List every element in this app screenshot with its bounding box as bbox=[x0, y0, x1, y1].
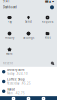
staticText: Coffee Shop bbox=[7, 78, 25, 81]
staticText: Dashboard bbox=[3, 6, 17, 9]
staticText: Transit bbox=[7, 88, 15, 91]
button[interactable]: Account bbox=[42, 97, 45, 100]
staticText: ▮▮▮ ▲ ▰ bbox=[45, 0, 54, 3]
button[interactable]: Search bbox=[51, 62, 54, 65]
button[interactable]: Profile bbox=[50, 5, 54, 9]
staticText: History bbox=[5, 36, 14, 40]
staticText: Grocery Store bbox=[7, 68, 25, 71]
button[interactable]: More bbox=[0, 44, 19, 60]
staticText: Recent bbox=[3, 62, 13, 65]
staticText: Yesterday -$5.25 bbox=[7, 82, 31, 85]
button[interactable]: History bbox=[0, 28, 19, 44]
button[interactable]: Transit bbox=[0, 86, 57, 96]
button[interactable]: Grocery Store bbox=[0, 67, 57, 77]
staticText: Request bbox=[41, 20, 53, 24]
staticText: 9:41 bbox=[3, 0, 10, 3]
button[interactable]: Send bbox=[19, 12, 38, 28]
button[interactable]: Pay bbox=[0, 12, 19, 28]
staticText: Mon -$2.75 bbox=[7, 91, 25, 95]
button[interactable]: Home bbox=[12, 97, 15, 100]
button[interactable]: Settings bbox=[19, 28, 38, 44]
button[interactable]: Coffee Shop bbox=[0, 77, 57, 86]
staticText: Send bbox=[25, 20, 32, 24]
staticText: Pay bbox=[7, 20, 11, 24]
staticText: Files bbox=[44, 36, 50, 40]
staticText: Today -$24.10 bbox=[7, 72, 28, 75]
staticText: More bbox=[6, 52, 13, 56]
button[interactable]: Stats bbox=[27, 97, 30, 100]
button[interactable]: Files bbox=[38, 28, 57, 44]
staticText: Settings bbox=[23, 36, 34, 40]
button[interactable]: Request bbox=[38, 12, 57, 28]
